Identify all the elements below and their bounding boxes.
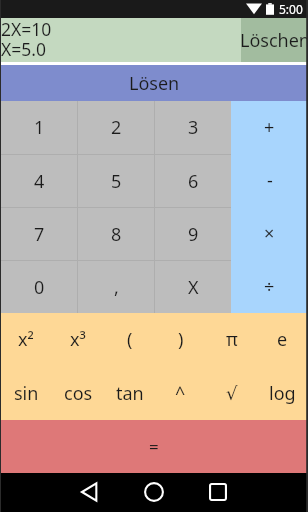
staticText: π [226,327,238,352]
button[interactable]: 7 [1,208,77,260]
staticText: x² [18,327,34,352]
button[interactable]: π [206,313,257,366]
staticText: Löschen [240,28,307,53]
staticText: × [264,221,275,246]
button[interactable]: 1 [1,101,77,154]
button[interactable]: 4 [1,155,77,207]
button[interactable]: 5 [78,155,154,207]
staticText: sin [14,381,39,406]
button[interactable]: sin [0,366,52,420]
staticText: √ [226,383,238,404]
staticText: ) [178,327,184,352]
staticText: - [267,168,273,193]
staticText: , [114,275,119,300]
staticText: cos [64,381,93,406]
staticText: 6 [188,169,199,194]
staticText: 2 [111,115,122,140]
staticText: 4 [34,169,45,194]
button[interactable]: tan [104,366,155,420]
button[interactable]: 2 [78,101,154,154]
button[interactable]: 3 [155,101,231,154]
staticText: 5:00 [279,1,303,17]
staticText: e [277,327,288,352]
button[interactable]: + [231,101,308,154]
staticText: Lösen [129,71,180,96]
staticText: tan [116,381,144,406]
button[interactable]: - [231,154,308,207]
button[interactable]: Löschen [241,18,308,62]
button[interactable]: x³ [52,313,104,366]
staticText: 8 [111,222,122,247]
staticText: 9 [188,222,199,247]
button[interactable]: √ [206,366,257,420]
button[interactable]: Home [129,472,179,511]
staticText: X [188,275,199,300]
staticText: = [149,435,159,458]
button[interactable]: ) [155,313,206,366]
staticText: 2X=10 X=5.0 [1,17,52,61]
button[interactable]: Lösen [0,65,308,101]
button[interactable]: log [257,366,308,420]
staticText: 3 [188,115,199,140]
staticText: + [264,115,275,140]
staticText: 5 [111,169,122,194]
staticText: ( [127,327,133,352]
button[interactable]: ÷ [231,260,308,313]
button[interactable]: × [231,207,308,260]
button[interactable]: e [257,313,308,366]
button[interactable]: X [155,261,231,313]
button[interactable]: = [0,420,308,473]
staticText: ÷ [264,274,275,299]
staticText: log [269,381,296,406]
staticText: x³ [70,327,86,352]
staticText: 7 [34,222,45,247]
staticText: 1 [34,115,45,140]
button[interactable]: ^ [155,366,206,420]
staticText: 0 [34,275,45,300]
button[interactable]: Recents [193,472,243,511]
button[interactable]: cos [52,366,104,420]
button[interactable]: Back [64,472,114,511]
button[interactable]: , [78,261,154,313]
button[interactable]: ( [104,313,155,366]
button[interactable]: x² [0,313,52,366]
button[interactable]: 6 [155,155,231,207]
button[interactable]: 8 [78,208,154,260]
staticText: ^ [175,381,186,406]
button[interactable]: 9 [155,208,231,260]
button[interactable]: 0 [1,261,77,313]
